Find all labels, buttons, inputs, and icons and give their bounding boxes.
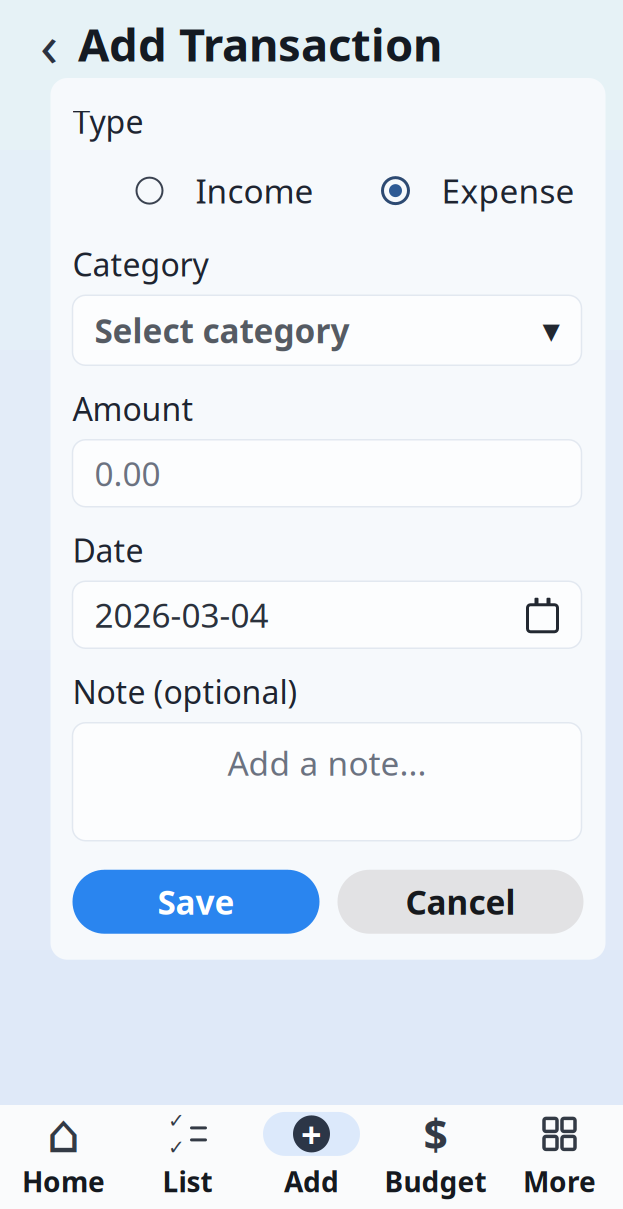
staticText: Add Transaction: [78, 14, 442, 74]
button[interactable]: Income: [135, 160, 313, 221]
staticText: Add: [284, 1163, 339, 1200]
button[interactable]: Cancel: [337, 870, 583, 934]
staticText: Home: [22, 1163, 105, 1200]
staticText: 0.00: [94, 451, 160, 495]
staticText: +: [301, 1110, 322, 1158]
button[interactable]: ⌂: [1, 1105, 125, 1209]
staticText: Save: [157, 880, 234, 924]
staticText: ‹: [40, 5, 58, 83]
button[interactable]: Save: [72, 870, 319, 934]
staticText: Note (optional): [72, 670, 297, 713]
button[interactable]: 2026-03-04: [72, 581, 581, 648]
staticText: More: [523, 1163, 596, 1200]
button[interactable]: $: [373, 1105, 497, 1209]
button[interactable]: Expense: [381, 160, 574, 221]
button[interactable]: Add a note...: [72, 723, 581, 841]
staticText: ✓: [168, 1136, 185, 1159]
staticText: ▾: [542, 311, 559, 350]
staticText: Add a note...: [227, 741, 426, 785]
staticText: Category: [72, 243, 208, 285]
staticText: Select category: [94, 308, 349, 352]
staticText: Expense: [441, 168, 574, 213]
staticText: Income: [195, 168, 313, 213]
button[interactable]: Back: [26, 16, 72, 72]
staticText: Date: [72, 529, 143, 571]
staticText: $: [423, 1106, 447, 1162]
button[interactable]: More: [497, 1105, 621, 1209]
staticText: ⌂: [46, 1104, 80, 1164]
staticText: Amount: [72, 387, 193, 430]
staticText: Type: [72, 100, 143, 142]
staticText: Cancel: [405, 880, 515, 924]
button[interactable]: ✓: [125, 1105, 249, 1209]
button[interactable]: 0.00: [72, 440, 581, 507]
staticText: 2026-03-04: [94, 593, 268, 637]
staticText: Budget: [384, 1163, 486, 1200]
staticText: ✓: [168, 1109, 185, 1132]
button[interactable]: +: [249, 1105, 373, 1209]
button[interactable]: Select category: [72, 295, 581, 365]
staticText: List: [162, 1163, 212, 1200]
